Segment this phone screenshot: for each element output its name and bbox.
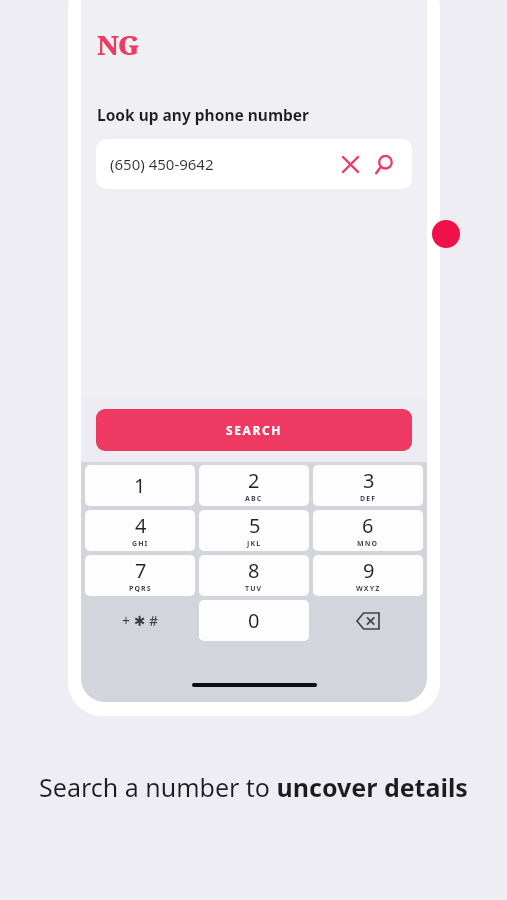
button[interactable]: 6 — [313, 510, 423, 551]
staticText: ABC — [245, 494, 263, 504]
staticText: 8 — [248, 557, 260, 584]
staticText: 6 — [362, 512, 374, 539]
staticText: SEARCH — [226, 422, 282, 438]
staticText: GHI — [132, 539, 149, 549]
button[interactable]: Backspace — [313, 600, 423, 641]
button[interactable]: Search — [370, 150, 398, 178]
button[interactable]: 5 — [199, 510, 309, 551]
button[interactable]: SEARCH — [96, 409, 412, 451]
staticText: 7 — [135, 557, 147, 584]
staticText: 9 — [363, 557, 375, 584]
button[interactable]: Symbols — [85, 600, 195, 641]
staticText: JKL — [247, 539, 262, 549]
staticText: PQRS — [129, 584, 152, 594]
staticText: + ✱ # — [122, 611, 159, 630]
button[interactable]: 8 — [199, 555, 309, 596]
button[interactable]: 9 — [313, 555, 423, 596]
staticText: TUV — [245, 584, 263, 594]
button[interactable]: 7 — [85, 555, 195, 596]
staticText: MNO — [357, 539, 379, 549]
staticText: WXYZ — [356, 584, 381, 594]
staticText: DEF — [360, 494, 377, 504]
staticText: 3 — [363, 467, 375, 494]
staticText: 1 — [134, 472, 146, 499]
button[interactable]: 3 — [313, 465, 423, 506]
staticText: 4 — [135, 512, 147, 539]
button[interactable]: Clear — [336, 150, 364, 178]
button[interactable]: (650) 450-9642 — [96, 139, 412, 189]
staticText: NG — [97, 26, 139, 63]
staticText: Look up any phone number — [97, 104, 309, 125]
button[interactable]: 0 — [199, 600, 309, 641]
staticText: (650) 450-9642 — [110, 154, 336, 174]
button[interactable]: 2 — [199, 465, 309, 506]
staticText: Search a number to uncover details — [28, 770, 479, 804]
button[interactable]: 1 — [85, 465, 195, 506]
staticText: 5 — [249, 512, 261, 539]
staticText: 2 — [248, 467, 260, 494]
staticText: 0 — [248, 607, 260, 634]
button[interactable]: 4 — [85, 510, 195, 551]
